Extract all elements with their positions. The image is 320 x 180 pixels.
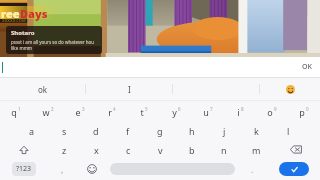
button[interactable]: p — [288, 102, 320, 121]
staticText: f — [126, 125, 130, 137]
button[interactable]: n — [208, 140, 240, 159]
staticText: d — [93, 125, 99, 137]
staticText: 8 — [241, 106, 244, 112]
staticText: ?123 — [16, 164, 32, 174]
button[interactable]: s — [48, 121, 80, 140]
staticText: v — [158, 144, 163, 156]
staticText: w — [42, 106, 50, 118]
button[interactable]: c — [112, 140, 144, 159]
staticText: u — [203, 106, 209, 118]
staticText: 9 — [274, 106, 277, 112]
button[interactable]: r — [96, 102, 128, 121]
button[interactable]: z — [48, 140, 80, 159]
button[interactable]: k — [240, 121, 272, 140]
button[interactable]: Shotaro — [6, 26, 102, 54]
button[interactable]: q — [0, 102, 32, 121]
button[interactable]: b — [176, 140, 208, 159]
staticText: ree — [1, 6, 20, 21]
staticText: i — [237, 106, 240, 118]
staticText: n — [221, 144, 227, 156]
button[interactable]: OK — [294, 59, 320, 75]
button[interactable]: e — [64, 102, 96, 121]
staticText: h — [189, 125, 195, 137]
button[interactable]: ok — [0, 78, 85, 100]
staticText: a — [29, 125, 35, 137]
staticText: c — [126, 144, 131, 156]
staticText: I — [128, 84, 131, 95]
button[interactable]: i — [224, 102, 256, 121]
button[interactable]: g — [144, 121, 176, 140]
staticText: 2 — [51, 106, 54, 112]
staticText: p — [299, 106, 305, 118]
staticText: l — [287, 125, 290, 137]
button[interactable]: h — [176, 121, 208, 140]
button[interactable]: Emoji — [77, 159, 107, 178]
staticText: j — [223, 125, 226, 137]
staticText: q — [11, 106, 17, 118]
button[interactable]: Backspace — [272, 140, 320, 159]
staticText: pssst i am all yours so do whatever hou … — [11, 39, 95, 51]
button[interactable]: I — [86, 78, 172, 100]
button[interactable]: m — [240, 140, 272, 159]
staticText: OK — [302, 62, 312, 72]
button[interactable]: y — [160, 102, 192, 121]
staticText: b — [189, 144, 195, 156]
staticText: Days — [20, 6, 48, 21]
staticText: Shotaro — [11, 29, 35, 37]
button[interactable]: ?123 — [0, 159, 47, 178]
staticText: x — [94, 144, 99, 156]
staticText: . — [251, 163, 254, 175]
staticText: 6 — [178, 106, 181, 112]
staticText: 3 — [82, 106, 85, 112]
button[interactable]: a — [16, 121, 48, 140]
button[interactable]: , — [47, 159, 77, 178]
button[interactable]: Emoji suggestion — [260, 78, 320, 100]
button[interactable]: t — [128, 102, 160, 121]
staticText: XXXXX.COM — [2, 18, 26, 23]
staticText: 0 — [306, 106, 309, 112]
button[interactable]: u — [192, 102, 224, 121]
button[interactable]: f — [112, 121, 144, 140]
button[interactable] — [107, 159, 237, 178]
staticText: s — [62, 125, 67, 137]
staticText: o — [267, 106, 273, 118]
staticText: 4 — [113, 106, 116, 112]
button[interactable]: o — [256, 102, 288, 121]
button[interactable]: OK — [0, 57, 320, 77]
staticText: , — [61, 163, 64, 175]
staticText: e — [75, 106, 81, 118]
button[interactable]: d — [80, 121, 112, 140]
staticText: z — [62, 144, 67, 156]
button[interactable]: w — [32, 102, 64, 121]
button[interactable]: x — [80, 140, 112, 159]
staticText: k — [254, 125, 259, 137]
staticText: y — [172, 106, 177, 118]
staticText: m — [252, 144, 261, 156]
staticText: 1 — [18, 106, 21, 112]
staticText: r — [108, 106, 112, 118]
button[interactable]: j — [208, 121, 240, 140]
staticText: g — [157, 125, 163, 137]
button[interactable]: l — [272, 121, 304, 140]
staticText: 5 — [145, 106, 148, 112]
staticText: 7 — [210, 106, 213, 112]
button[interactable]: Enter — [267, 159, 320, 178]
staticText: t — [140, 106, 144, 118]
staticText: ok — [38, 84, 48, 95]
button[interactable]: Shift — [0, 140, 48, 159]
button[interactable]: v — [144, 140, 176, 159]
